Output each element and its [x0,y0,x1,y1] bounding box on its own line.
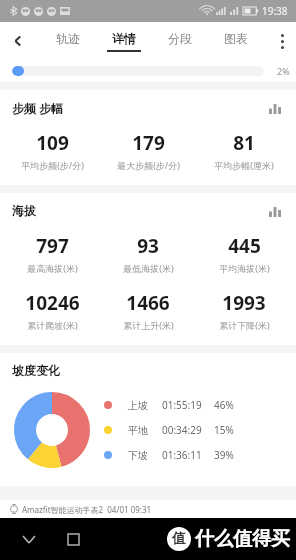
staticText: 10246 [25,290,80,316]
staticText: 19:38 [262,4,288,18]
button[interactable]: Chart [266,100,284,118]
staticText: 值 [172,530,186,548]
staticText: 01:55:19 [162,398,214,412]
staticText: 累计下降(米) [219,319,270,331]
staticText: 39% [214,448,234,462]
button[interactable]: 109 [4,130,100,171]
staticText: 步频 步幅 [12,100,64,116]
staticText: 分段 [168,31,192,46]
staticText: 46% [214,398,234,412]
staticText: 1993 [222,290,266,316]
staticText: 93 [137,233,159,259]
staticText: 坡度变化 [12,363,60,378]
button[interactable]: 797 [4,233,100,274]
button[interactable]: 下坡 [104,448,234,462]
staticText: 详情 [112,31,136,46]
button[interactable]: Back [0,22,36,60]
button[interactable]: More options [268,22,296,60]
staticText: 上坡 [128,399,162,412]
staticText: 81 [233,130,255,156]
staticText: 什么值得买 [195,527,290,551]
button[interactable]: 10246 [4,290,100,331]
staticText: 平地 [128,424,162,437]
button[interactable]: 179 [100,130,196,171]
staticText: 下坡 [128,449,162,462]
button[interactable]: 445 [196,233,292,274]
staticText: 轨迹 [56,31,80,46]
staticText: Amazfit智能运动手表2 04/01 09:31 [22,504,152,515]
button[interactable]: Chart [266,203,284,221]
button[interactable]: 图表 [208,22,264,60]
button[interactable]: 81 [196,130,292,171]
button[interactable]: 分段 [152,22,208,60]
staticText: 15% [214,423,234,437]
button[interactable]: Back [14,524,44,554]
button[interactable]: 详情 [96,22,152,60]
staticText: 累计爬坡(米) [27,319,78,331]
staticText: 445 [228,233,261,259]
staticText: 2% [277,65,290,77]
staticText: 179 [132,130,165,156]
staticText: 1466 [126,290,170,316]
staticText: 最大步频(步/分) [117,159,180,171]
staticText: 海拔 [12,203,36,218]
staticText: 00:34:29 [162,423,214,437]
button[interactable]: 平地 [104,423,234,437]
staticText: 平均步频(步/分) [21,159,84,171]
staticText: 平均步幅(厘米) [214,159,274,171]
staticText: 最低海拔(米) [123,262,174,274]
button[interactable]: 上坡 [104,398,234,412]
staticText: 平均海拔(米) [219,262,270,274]
button[interactable]: 1993 [196,290,292,331]
staticText: 797 [36,233,69,259]
button[interactable]: Recents [58,524,88,554]
button[interactable]: 93 [100,233,196,274]
staticText: 图表 [224,31,248,46]
staticText: 累计上升(米) [123,319,174,331]
staticText: 01:36:11 [162,448,214,462]
button[interactable]: 轨迹 [40,22,96,60]
staticText: 最高海拔(米) [27,262,78,274]
button[interactable]: 1466 [100,290,196,331]
staticText: 109 [36,130,69,156]
